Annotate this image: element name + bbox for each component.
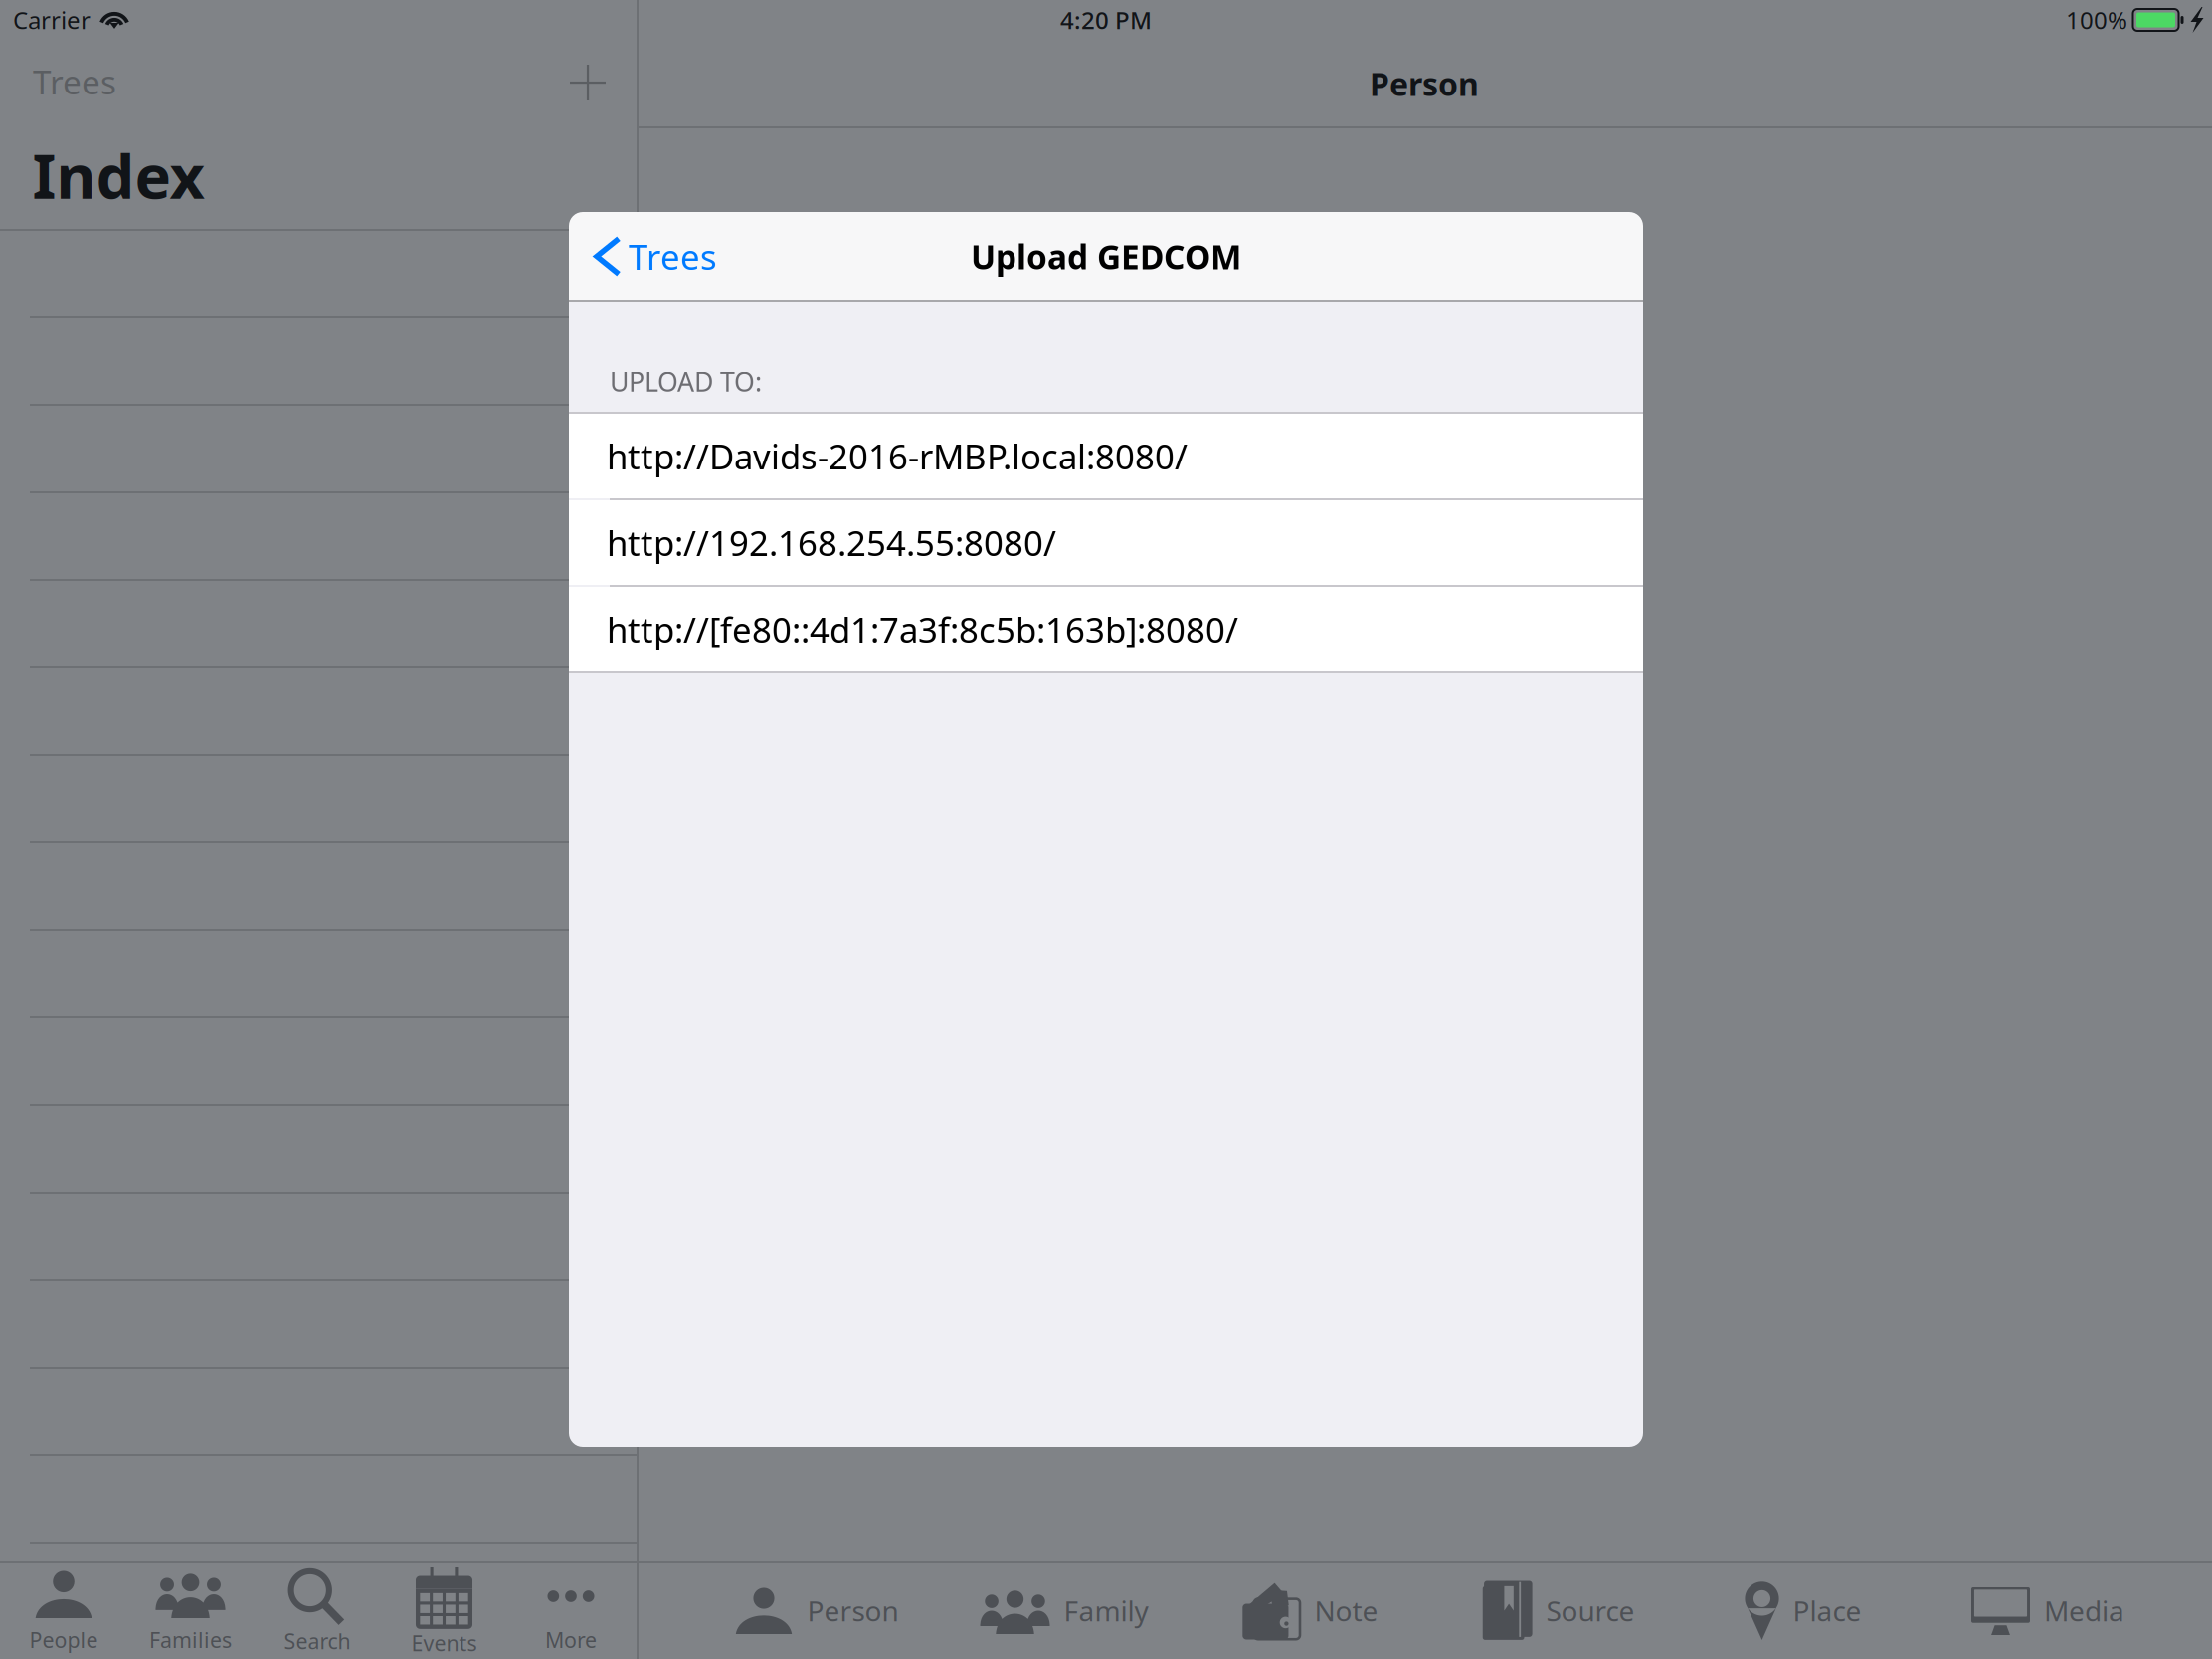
staticText: UPLOAD TO: [610, 364, 762, 399]
staticText: Person [1370, 62, 1479, 105]
button[interactable]: http://Davids-2016-rMBP.local:8080/ [569, 414, 1643, 498]
button[interactable]: http://192.168.254.55:8080/ [569, 500, 1643, 585]
button[interactable]: http://[fe80::4d1:7a3f:8c5b:163b]:8080/ [569, 587, 1643, 671]
staticText: Media [2044, 1592, 2124, 1629]
button[interactable]: Source [1468, 1563, 1647, 1659]
staticText: Source [1546, 1592, 1635, 1629]
button[interactable]: Place [1733, 1563, 1873, 1659]
button[interactable]: Note [1230, 1563, 1390, 1659]
button[interactable]: Events [381, 1563, 507, 1659]
staticText: Place [1793, 1592, 1862, 1629]
staticText: 100% [2066, 4, 2127, 36]
staticText: Search [284, 1627, 351, 1655]
button[interactable]: More [508, 1563, 634, 1659]
staticText: Index [32, 135, 204, 216]
staticText: Families [149, 1626, 232, 1654]
staticText: http://[fe80::4d1:7a3f:8c5b:163b]:8080/ [607, 606, 1238, 652]
staticText: Person [807, 1592, 899, 1629]
staticText: Trees [33, 60, 116, 104]
button[interactable]: Families [127, 1563, 254, 1659]
staticText: Family [1064, 1592, 1148, 1629]
staticText: Trees [629, 233, 717, 279]
staticText: Events [411, 1629, 477, 1657]
staticText: Upload GEDCOM [971, 234, 1241, 278]
button[interactable]: People [0, 1563, 127, 1659]
staticText: People [29, 1626, 98, 1654]
staticText: Carrier [13, 4, 91, 36]
staticText: 4:20 PM [1060, 4, 1152, 36]
button[interactable]: Add tree [548, 43, 628, 122]
staticText: http://192.168.254.55:8080/ [607, 520, 1056, 565]
button[interactable]: Family [968, 1563, 1160, 1659]
button[interactable]: Media [1959, 1563, 2136, 1659]
staticText: http://Davids-2016-rMBP.local:8080/ [607, 433, 1188, 479]
button[interactable]: Trees [569, 212, 739, 300]
staticText: Note [1314, 1592, 1378, 1629]
staticText: More [545, 1626, 597, 1654]
button[interactable]: Search [254, 1563, 380, 1659]
button[interactable]: Person [723, 1563, 910, 1659]
